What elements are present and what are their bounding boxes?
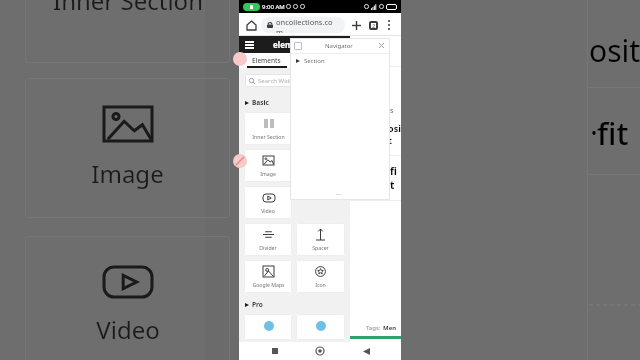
button[interactable]: Divider	[244, 223, 292, 256]
button[interactable]: Elements	[239, 53, 294, 68]
staticText: Inner Section	[252, 133, 285, 140]
staticText: osit	[589, 30, 640, 71]
button[interactable]: Widgets grid	[333, 39, 344, 50]
staticText: Icon	[315, 281, 326, 288]
button[interactable]: Menu	[355, 47, 367, 59]
button[interactable]: Globals	[294, 53, 350, 68]
staticText: Basic	[252, 98, 269, 107]
staticText: Search Widget...	[258, 77, 304, 85]
staticText: Video	[96, 313, 160, 346]
button[interactable]: Elementor menu	[245, 39, 256, 50]
staticText: Tags:	[366, 324, 381, 332]
staticText: Inner Section	[53, 0, 203, 17]
button[interactable]: Tabs	[366, 18, 380, 32]
button[interactable]: More options	[382, 18, 396, 32]
staticText: Video	[261, 207, 275, 214]
staticText: Google Maps	[252, 281, 285, 288]
staticText: Men	[383, 324, 397, 332]
staticText: fit	[390, 164, 401, 192]
staticText: elementor	[273, 39, 315, 50]
staticText: Pro	[252, 300, 263, 309]
button[interactable]: Spacer	[296, 223, 345, 256]
button[interactable]: Image	[244, 149, 292, 182]
button[interactable]: Google Maps	[244, 260, 292, 293]
staticText: Divider	[259, 244, 277, 251]
staticText: oncollections.com	[276, 17, 339, 33]
staticText: Globals	[311, 56, 334, 65]
button[interactable]: Home	[310, 342, 330, 360]
staticText: Elements	[252, 56, 281, 65]
staticText: fit	[597, 112, 629, 154]
button[interactable]: Close navigator	[377, 41, 386, 50]
staticText: Navigator	[325, 42, 353, 50]
button[interactable]: Inner Section	[244, 112, 292, 145]
button[interactable]: New tab	[349, 18, 363, 32]
staticText: osit	[388, 122, 401, 146]
button[interactable]: Dock navigator	[294, 42, 302, 50]
button[interactable]: Basic	[239, 93, 350, 110]
button[interactable]: Back	[356, 342, 376, 360]
staticText: •	[591, 122, 598, 144]
button[interactable]	[244, 314, 292, 340]
staticText: 9:00 AM	[262, 3, 285, 11]
button[interactable]: Home	[244, 18, 258, 32]
staticText: s	[390, 106, 394, 116]
button[interactable]: Video	[244, 186, 292, 219]
button[interactable]: Icon	[296, 260, 345, 293]
button[interactable]: Pro	[239, 295, 350, 312]
staticText: Section	[304, 57, 325, 65]
button[interactable]: Recent apps	[265, 342, 285, 360]
staticText: Image	[260, 170, 276, 177]
button[interactable]: oncollections.com	[261, 17, 345, 33]
staticText: ...	[336, 188, 342, 198]
button[interactable]: Section	[290, 54, 390, 67]
staticText: Spacer	[312, 244, 329, 251]
staticText: 2	[372, 22, 376, 30]
button[interactable]: Search Widget...	[245, 74, 344, 87]
staticText: Image	[91, 157, 164, 190]
button[interactable]	[296, 314, 345, 340]
